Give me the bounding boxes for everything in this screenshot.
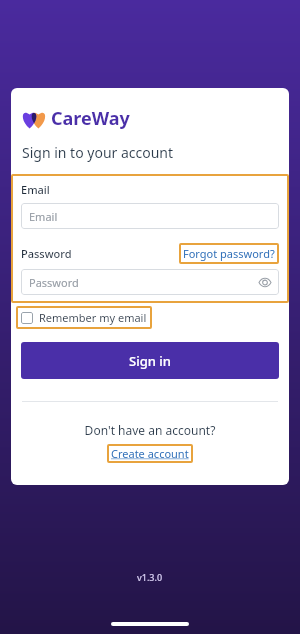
staticText: CareWay: [51, 106, 130, 131]
button[interactable]: Show password: [257, 274, 273, 290]
button[interactable]: Password: [21, 269, 279, 295]
button[interactable]: Create account: [107, 444, 193, 463]
staticText: Create account: [111, 446, 189, 461]
button[interactable]: Email: [21, 203, 279, 229]
staticText: Sign in: [129, 352, 171, 370]
staticText: Remember my email: [39, 310, 147, 325]
staticText: Password: [21, 246, 72, 261]
button[interactable]: Remember my email: [16, 306, 152, 329]
staticText: Sign in to your account: [22, 143, 174, 162]
staticText: v1.3.0: [137, 571, 163, 583]
button[interactable]: Forgot password?: [179, 243, 279, 264]
staticText: Password: [29, 275, 79, 290]
staticText: Email: [21, 182, 50, 197]
staticText: Don't have an account?: [11, 422, 289, 438]
staticText: Forgot password?: [183, 246, 275, 261]
button[interactable]: Sign in: [21, 342, 279, 379]
staticText: Email: [29, 209, 58, 224]
